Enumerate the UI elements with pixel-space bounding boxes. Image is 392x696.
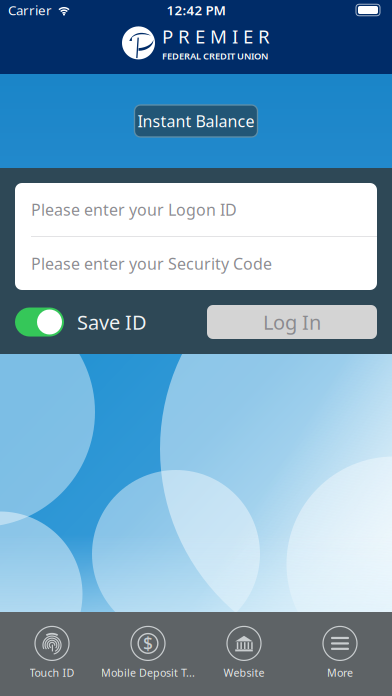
button[interactable]: Instant Balance bbox=[134, 105, 257, 137]
staticText: Instant Balance bbox=[137, 110, 254, 132]
button[interactable]: $ bbox=[100, 616, 196, 692]
button[interactable]: More bbox=[292, 616, 388, 692]
staticText: Log In bbox=[263, 309, 321, 335]
staticText: P R E M I E R bbox=[162, 24, 270, 49]
button[interactable]: Save ID bbox=[15, 307, 147, 336]
staticText: 12:42 PM bbox=[166, 1, 225, 19]
button[interactable]: Log In bbox=[207, 305, 377, 339]
staticText: More bbox=[327, 665, 353, 680]
staticText: FEDERAL CREDIT UNION bbox=[162, 50, 268, 62]
staticText: Mobile Deposit T... bbox=[101, 665, 195, 680]
staticText: Touch ID bbox=[29, 665, 74, 680]
staticText: Save ID bbox=[77, 309, 147, 335]
staticText: $ bbox=[143, 632, 153, 655]
button[interactable]: Website bbox=[196, 616, 292, 692]
staticText: Please enter your Logon ID bbox=[31, 199, 237, 220]
button[interactable]: Touch ID bbox=[4, 616, 100, 692]
staticText: Please enter your Security Code bbox=[31, 253, 272, 274]
staticText: Website bbox=[223, 665, 264, 680]
staticText: Carrier bbox=[8, 1, 52, 19]
